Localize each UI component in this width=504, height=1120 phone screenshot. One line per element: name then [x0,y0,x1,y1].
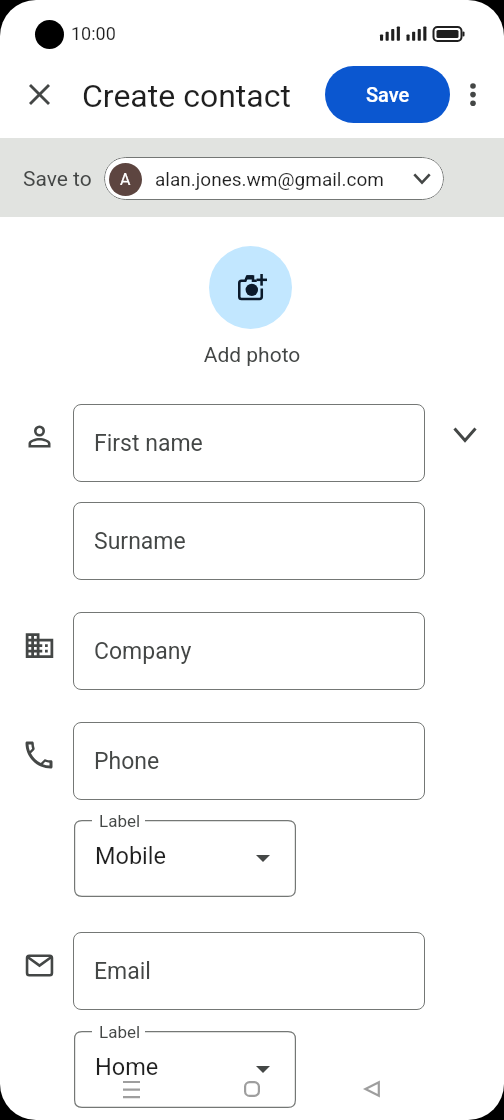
staticText: Home [95,1053,159,1081]
staticText: Save [366,83,410,106]
button[interactable]: More options [449,70,497,118]
staticText: Label [99,811,141,831]
staticText: Add photo [0,343,504,368]
staticText: First name [94,430,203,457]
staticText: Phone [94,748,160,775]
staticText: Create contact [82,77,291,115]
button[interactable]: Email [73,932,425,1010]
button[interactable]: Company [73,612,425,690]
button[interactable]: Phone [73,722,425,800]
button[interactable]: Recents [107,1065,157,1115]
button[interactable]: Back [347,1065,397,1115]
staticText: Company [94,638,192,665]
staticText: alan.jones.wm@gmail.com [155,168,384,190]
button[interactable]: A [104,157,444,200]
button[interactable]: Save [325,66,450,123]
button[interactable]: Add photo [209,246,292,329]
button[interactable]: Home [227,1065,277,1115]
staticText: Mobile [95,842,167,870]
staticText: 10:00 [71,23,116,44]
staticText: Surname [94,528,186,555]
staticText: Label [99,1022,141,1042]
staticText: Save to [23,167,92,192]
staticText: Email [94,958,151,985]
staticText: A [120,170,131,189]
button[interactable]: Surname [73,502,425,580]
button[interactable]: Close [15,70,63,118]
button[interactable]: First name [73,404,425,482]
button[interactable]: Expand name fields [440,410,489,459]
